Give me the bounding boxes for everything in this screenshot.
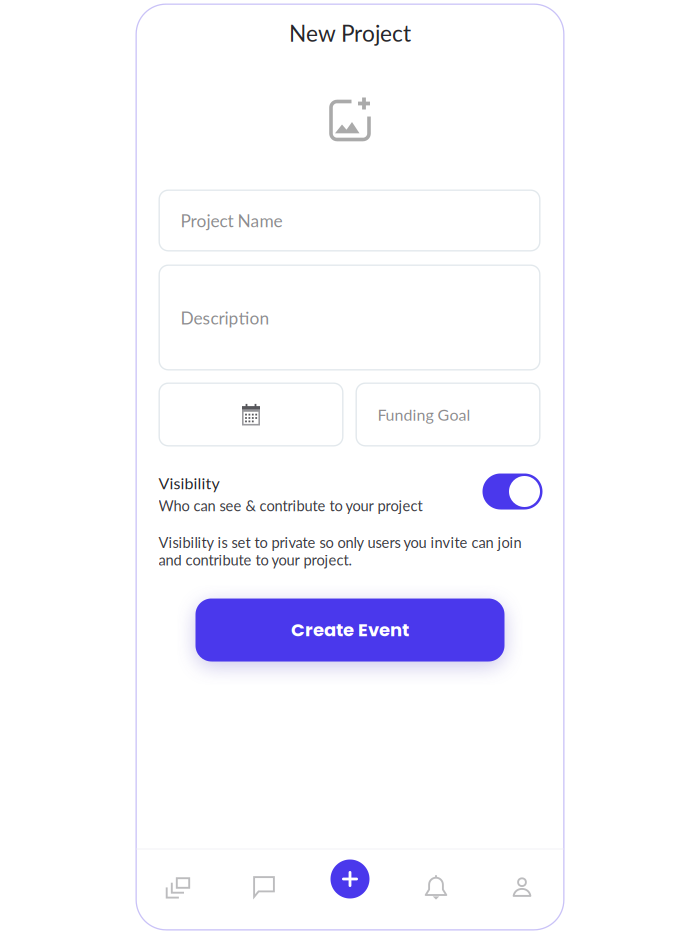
button[interactable]: Funding Goal <box>355 382 540 446</box>
staticText: Project Name <box>180 210 282 231</box>
staticText: New Project <box>289 19 411 47</box>
button[interactable]: Pick date <box>158 382 343 446</box>
staticText: Create Event <box>291 617 409 643</box>
staticText: Funding Goal <box>377 405 470 424</box>
staticText: Visibility is set to private so only use… <box>158 533 521 569</box>
button[interactable]: Notifications <box>393 846 479 927</box>
button[interactable]: Profile <box>479 846 565 927</box>
staticText: Who can see & contribute to your project <box>158 497 422 514</box>
button[interactable]: Projects <box>135 846 221 927</box>
staticText: Description <box>180 307 269 328</box>
button[interactable]: Messages <box>221 846 307 927</box>
button[interactable]: Visibility toggle <box>482 473 542 509</box>
button[interactable]: Create Event <box>195 598 504 661</box>
button[interactable]: Create <box>307 846 393 927</box>
staticText: Visibility <box>158 473 219 493</box>
